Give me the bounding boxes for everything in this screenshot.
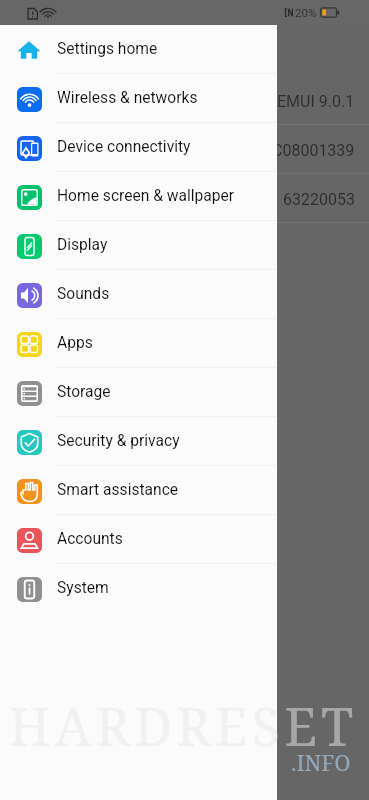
staticText: Storage (57, 383, 111, 401)
button[interactable]: Settings home (0, 25, 277, 74)
staticText: Sounds (57, 285, 110, 303)
button[interactable]: Storage (0, 368, 277, 417)
button[interactable]: Wireless & networks (0, 74, 277, 123)
staticText: HARDRESET (9, 690, 369, 761)
staticText: .INFO (291, 747, 351, 777)
button[interactable]: Sounds (0, 270, 277, 319)
button[interactable]: Smart assistance (0, 466, 277, 515)
staticText: Security & privacy (57, 432, 180, 450)
staticText: Smart assistance (57, 481, 179, 499)
button[interactable]: Security & privacy (0, 417, 277, 466)
staticText: Wireless & networks (57, 89, 198, 107)
button[interactable]: Apps (0, 319, 277, 368)
staticText: 8C08001339 (263, 141, 355, 160)
staticText: 63220053 (283, 190, 355, 209)
button[interactable]: Accounts (0, 515, 277, 564)
staticText: Display (57, 236, 108, 254)
button[interactable]: System (0, 564, 277, 613)
staticText: Home screen & wallpaper (57, 187, 235, 205)
staticText: Device connectivity (57, 138, 191, 156)
staticText: Accounts (57, 530, 123, 548)
staticText: Settings home (57, 40, 158, 58)
staticText: 20% (295, 6, 317, 19)
staticText: Apps (57, 334, 93, 352)
staticText: HARDRESET (9, 690, 277, 761)
button[interactable]: Display (0, 221, 277, 270)
button[interactable]: Home screen & wallpaper (0, 172, 277, 221)
staticText: EMUI 9.0.1 (277, 92, 355, 111)
staticText: System (57, 579, 109, 597)
button[interactable]: Device connectivity (0, 123, 277, 172)
